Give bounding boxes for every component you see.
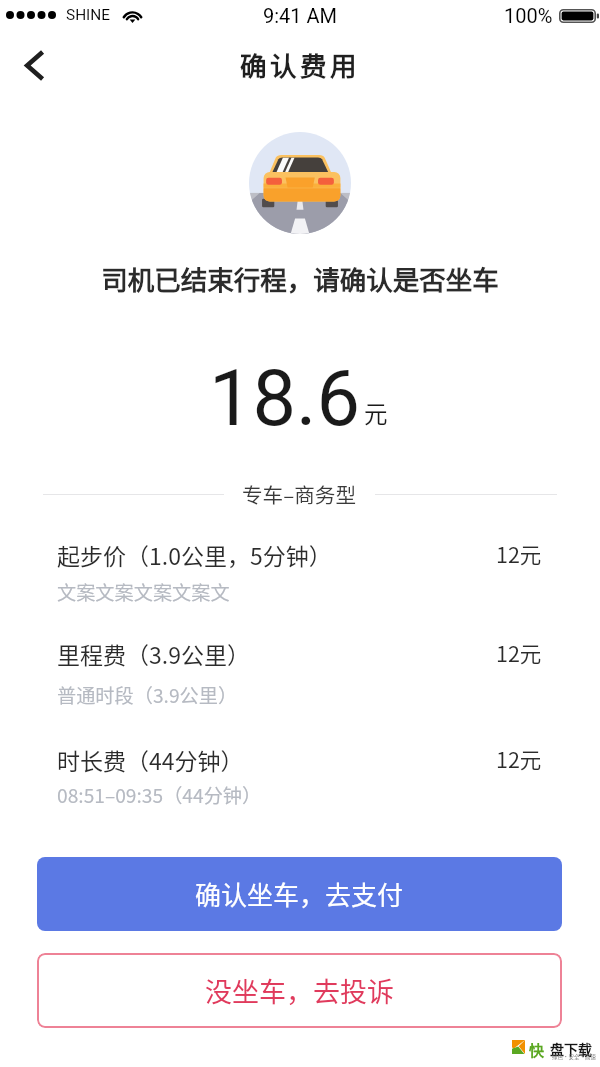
staticText: 9:41 AM [263, 4, 338, 27]
staticText: 确认坐车，去支付 [195, 875, 404, 913]
staticText: 12元 [496, 538, 542, 569]
staticText: 司机已结束行程，请确认是否坐车 [0, 259, 600, 297]
staticText: 确认费用 [0, 45, 600, 83]
staticText: 08:51–09:35（44分钟） [57, 781, 262, 809]
button[interactable]: 确认坐车，去支付 [37, 857, 562, 931]
staticText: 绿色·安全·高速 [552, 1053, 597, 1061]
staticText: 没坐车，去投诉 [205, 971, 394, 1010]
staticText: 里程费（3.9公里） [57, 637, 250, 670]
staticText: 时长费（44分钟） [57, 743, 244, 776]
staticText: 盘下载 [550, 1039, 592, 1059]
staticText: 起步价（1.0公里，5分钟） [57, 538, 332, 571]
button[interactable]: 没坐车，去投诉 [37, 953, 562, 1028]
staticText: 快 [529, 1039, 545, 1061]
staticText: 18.6 [209, 353, 361, 444]
staticText: 文案文案文案文案文 [57, 578, 230, 606]
staticText: 12元 [496, 743, 542, 774]
button[interactable]: 起步价（1.0公里，5分钟） [0, 538, 600, 612]
button[interactable]: 里程费（3.9公里） [0, 637, 600, 715]
staticText: 12元 [496, 637, 542, 668]
staticText: 专车–商务型 [242, 479, 357, 509]
staticText: 元 [364, 396, 388, 430]
staticText: SHINE [66, 6, 111, 24]
button[interactable]: Back [5, 37, 62, 94]
staticText: 100% [504, 4, 553, 27]
button[interactable]: 时长费（44分钟） [0, 743, 600, 815]
staticText: 普通时段（3.9公里） [57, 681, 238, 709]
